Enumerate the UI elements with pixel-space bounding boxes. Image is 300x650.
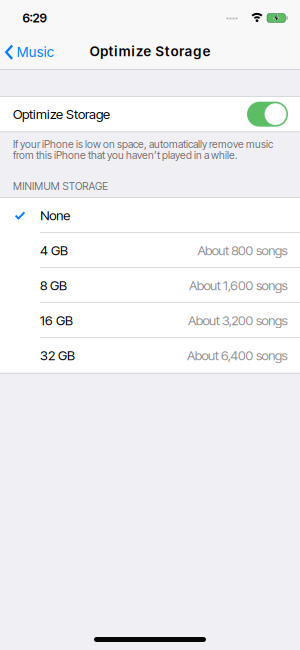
staticText: About 3,200 songs <box>188 312 287 328</box>
staticText: Music <box>16 44 54 60</box>
staticText: Optimize Storage <box>13 106 110 122</box>
staticText: 8 GB <box>40 277 67 293</box>
staticText: from this iPhone that you haven’t played… <box>13 149 237 161</box>
staticText: If your iPhone is low on space, automati… <box>13 138 273 150</box>
staticText: About 1,600 songs <box>189 277 287 293</box>
staticText: MINIMUM STORAGE <box>13 180 108 192</box>
staticText: About 800 songs <box>197 242 287 258</box>
staticText: None <box>40 207 70 223</box>
staticText: 4 GB <box>40 242 68 258</box>
staticText: 32 GB <box>40 347 75 363</box>
staticText: 6:29 <box>22 11 46 25</box>
staticText: About 6,400 songs <box>187 347 287 363</box>
staticText: 16 GB <box>40 312 73 328</box>
staticText: Optimize Storage <box>89 43 211 60</box>
